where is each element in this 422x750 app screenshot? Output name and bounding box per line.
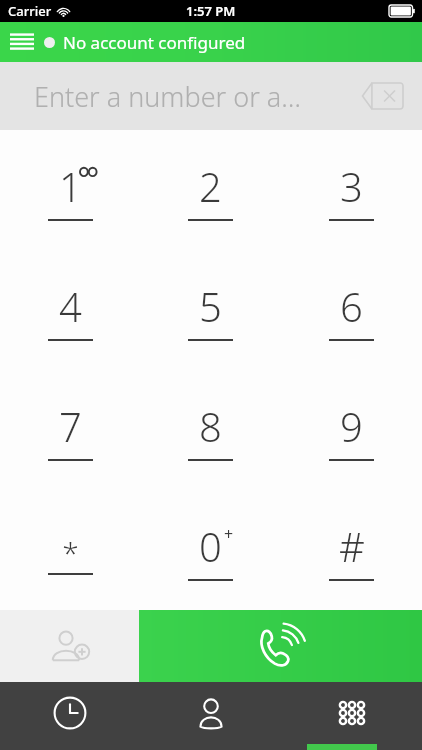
staticText: 5 <box>199 279 222 333</box>
staticText: # <box>339 519 365 573</box>
button[interactable]: Recent calls <box>0 682 140 750</box>
button[interactable]: 5 <box>140 250 281 370</box>
button[interactable]: 2 <box>140 130 281 250</box>
staticText: Carrier <box>8 2 52 20</box>
button[interactable]: Open menu <box>0 22 422 62</box>
staticText: 7 <box>59 399 82 453</box>
button[interactable]: Enter a number or a… <box>0 62 422 130</box>
staticText: 2 <box>199 159 222 213</box>
staticText: 1 <box>59 159 82 213</box>
staticText: + <box>224 523 234 545</box>
other: Open menu <box>10 33 34 51</box>
staticText: Enter a number or a… <box>34 78 302 115</box>
button[interactable]: Contacts <box>140 682 281 750</box>
button[interactable]: 4 <box>0 250 140 370</box>
button[interactable]: # <box>281 490 422 610</box>
button[interactable]: * <box>0 490 140 610</box>
button[interactable]: 9 <box>281 370 422 490</box>
staticText: 9 <box>340 399 363 453</box>
staticText: No account configured <box>63 31 246 54</box>
staticText: 1:57 PM <box>186 2 236 20</box>
button[interactable]: 7 <box>0 370 140 490</box>
staticText: 6 <box>340 279 363 333</box>
button[interactable]: 8 <box>140 370 281 490</box>
button[interactable]: 1 <box>0 130 140 250</box>
button[interactable]: Add contact <box>0 610 139 682</box>
staticText: * <box>62 532 79 573</box>
button[interactable]: Backspace <box>356 78 408 114</box>
button[interactable]: 0 <box>140 490 281 610</box>
button[interactable]: 3 <box>281 130 422 250</box>
staticText: 3 <box>340 159 363 213</box>
button[interactable]: Call <box>139 610 422 682</box>
button[interactable]: Dialpad <box>281 682 422 750</box>
staticText: 0 <box>199 519 222 573</box>
staticText: 4 <box>59 279 82 333</box>
button[interactable]: 6 <box>281 250 422 370</box>
staticText: 8 <box>199 399 222 453</box>
